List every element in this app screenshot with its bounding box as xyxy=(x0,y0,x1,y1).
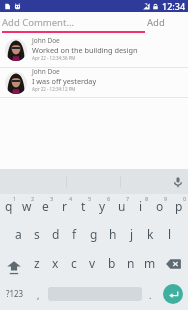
staticText: 3 xyxy=(50,195,54,202)
staticText: Apr 22 - 12:34:36 PM xyxy=(32,55,76,61)
button[interactable] xyxy=(121,169,188,194)
button[interactable]: ?123 xyxy=(1,283,28,303)
staticText: r xyxy=(62,198,67,214)
button[interactable]: x xyxy=(46,252,64,281)
staticText: 5 xyxy=(88,195,92,202)
staticText: y xyxy=(99,198,106,214)
staticText: 1 xyxy=(13,195,17,202)
button[interactable]: 6 xyxy=(93,194,112,223)
staticText: 0 xyxy=(183,195,187,202)
button[interactable]: Voice input xyxy=(171,175,185,189)
staticText: 8 xyxy=(145,195,149,202)
button[interactable]: j xyxy=(122,223,141,252)
button[interactable]: f xyxy=(65,223,84,252)
button[interactable]: Backspace xyxy=(159,252,188,281)
button[interactable]: 4 xyxy=(55,194,74,223)
staticText: a xyxy=(15,226,22,242)
staticText: k xyxy=(147,226,154,242)
staticText: c xyxy=(71,255,77,271)
staticText: Add Comment... xyxy=(2,16,75,29)
staticText: 9 xyxy=(164,195,168,202)
staticText: j xyxy=(130,226,134,242)
staticText: e xyxy=(42,198,49,214)
staticText: s xyxy=(34,226,40,242)
staticText: Worked on the building design xyxy=(32,45,138,55)
button[interactable]: k xyxy=(141,223,160,252)
staticText: p xyxy=(175,198,183,214)
staticText: l xyxy=(168,226,172,242)
button[interactable]: 2 xyxy=(18,194,36,223)
button[interactable]: 1 xyxy=(0,194,18,223)
staticText: 2 xyxy=(31,195,35,202)
staticText: x xyxy=(52,255,59,271)
staticText: 6 xyxy=(107,195,111,202)
staticText: u xyxy=(118,198,126,214)
button[interactable]: 7 xyxy=(112,194,131,223)
button[interactable]: b xyxy=(102,252,121,281)
button[interactable]: 0 xyxy=(169,194,188,223)
button[interactable]: John Doe xyxy=(0,68,188,97)
button[interactable]: , xyxy=(30,285,46,305)
staticText: z xyxy=(34,255,40,271)
staticText: ?123 xyxy=(6,288,24,299)
staticText: f xyxy=(72,226,77,242)
staticText: John Doe xyxy=(32,36,60,45)
staticText: John Doe xyxy=(32,67,60,76)
button[interactable]: z xyxy=(28,252,46,281)
staticText: , xyxy=(37,289,40,301)
button[interactable]: l xyxy=(160,223,179,252)
button[interactable]: John Doe xyxy=(0,33,188,67)
button[interactable]: . xyxy=(142,285,158,305)
staticText: 12:34 xyxy=(162,0,186,12)
button[interactable]: 5 xyxy=(74,194,93,223)
staticText: w xyxy=(22,198,32,214)
staticText: i xyxy=(139,198,143,214)
button[interactable]: v xyxy=(83,252,102,281)
staticText: t xyxy=(81,198,86,214)
staticText: q xyxy=(5,198,13,214)
button[interactable]: n xyxy=(121,252,140,281)
staticText: Apr 22 - 12:34:12 PM xyxy=(32,86,76,92)
staticText: o xyxy=(156,198,164,214)
button[interactable]: Add xyxy=(147,16,165,29)
button[interactable]: d xyxy=(46,223,65,252)
button[interactable]: 8 xyxy=(131,194,150,223)
staticText: n xyxy=(127,255,135,271)
staticText: v xyxy=(89,255,96,271)
staticText: 7 xyxy=(126,195,130,202)
button[interactable]: Enter xyxy=(163,284,183,304)
staticText: I was off yesterday xyxy=(32,76,97,86)
button[interactable]: a xyxy=(9,223,27,252)
button[interactable]: g xyxy=(84,223,103,252)
staticText: b xyxy=(108,255,116,271)
staticText: g xyxy=(90,226,98,242)
button[interactable]: s xyxy=(27,223,46,252)
staticText: . xyxy=(149,289,152,301)
button[interactable]: 3 xyxy=(36,194,55,223)
staticText: h xyxy=(109,226,117,242)
staticText: m xyxy=(144,255,156,271)
button[interactable]: c xyxy=(64,252,83,281)
button[interactable]: 9 xyxy=(150,194,169,223)
button[interactable]: m xyxy=(140,252,159,281)
staticText: d xyxy=(52,226,60,242)
button[interactable]: Shift xyxy=(0,252,28,281)
staticText: 4 xyxy=(69,195,73,202)
button[interactable]: h xyxy=(103,223,122,252)
